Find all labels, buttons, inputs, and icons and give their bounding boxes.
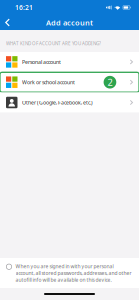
staticText: 2 (107, 76, 112, 88)
button[interactable]: Back (0, 15, 16, 30)
button[interactable]: Work or school account (0, 72, 139, 92)
staticText: Add account (46, 17, 93, 28)
button[interactable]: Personal account (0, 52, 139, 72)
staticText: 16:21 (15, 3, 33, 12)
staticText: Work or school account (22, 79, 75, 86)
staticText: When you are signed in with your persona… (15, 263, 131, 283)
button[interactable]: Other (Google, Facebook, etc.) (0, 93, 139, 112)
staticText: Other (Google, Facebook, etc.) (22, 99, 93, 106)
staticText: Personal account (22, 58, 61, 65)
staticText: WHAT KIND OF ACCOUNT ARE YOU ADDING? (6, 40, 101, 47)
